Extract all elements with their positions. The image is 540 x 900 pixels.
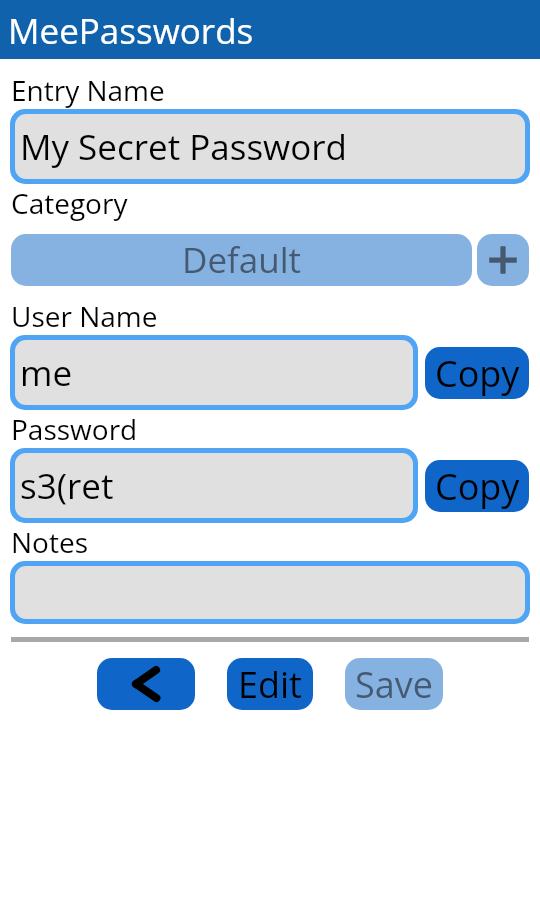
staticText: User Name bbox=[11, 297, 158, 335]
staticText: Copy bbox=[435, 462, 520, 511]
button[interactable]: me bbox=[15, 340, 413, 405]
staticText: My Secret Password bbox=[20, 123, 347, 171]
staticText: s3(ret bbox=[20, 462, 114, 510]
staticText: Category bbox=[11, 184, 128, 222]
button[interactable]: Add category bbox=[477, 234, 529, 286]
staticText: Default bbox=[182, 236, 302, 284]
button[interactable]: Back bbox=[97, 658, 195, 710]
staticText: Password bbox=[11, 410, 138, 448]
staticText: Entry Name bbox=[11, 71, 165, 109]
button[interactable]: Edit bbox=[227, 658, 313, 710]
staticText: MeePasswords bbox=[8, 7, 254, 55]
button[interactable]: Copy bbox=[425, 347, 529, 399]
button[interactable]: Default bbox=[11, 234, 472, 286]
button[interactable] bbox=[15, 566, 525, 619]
button[interactable]: My Secret Password bbox=[15, 114, 525, 179]
button[interactable]: Copy bbox=[425, 460, 529, 512]
staticText: Notes bbox=[11, 523, 88, 561]
staticText: Edit bbox=[238, 660, 302, 709]
staticText: Copy bbox=[435, 349, 520, 398]
button[interactable]: Save bbox=[345, 658, 443, 710]
staticText: Save bbox=[355, 660, 433, 709]
button[interactable]: s3(ret bbox=[15, 453, 413, 518]
staticText: me bbox=[20, 349, 73, 397]
